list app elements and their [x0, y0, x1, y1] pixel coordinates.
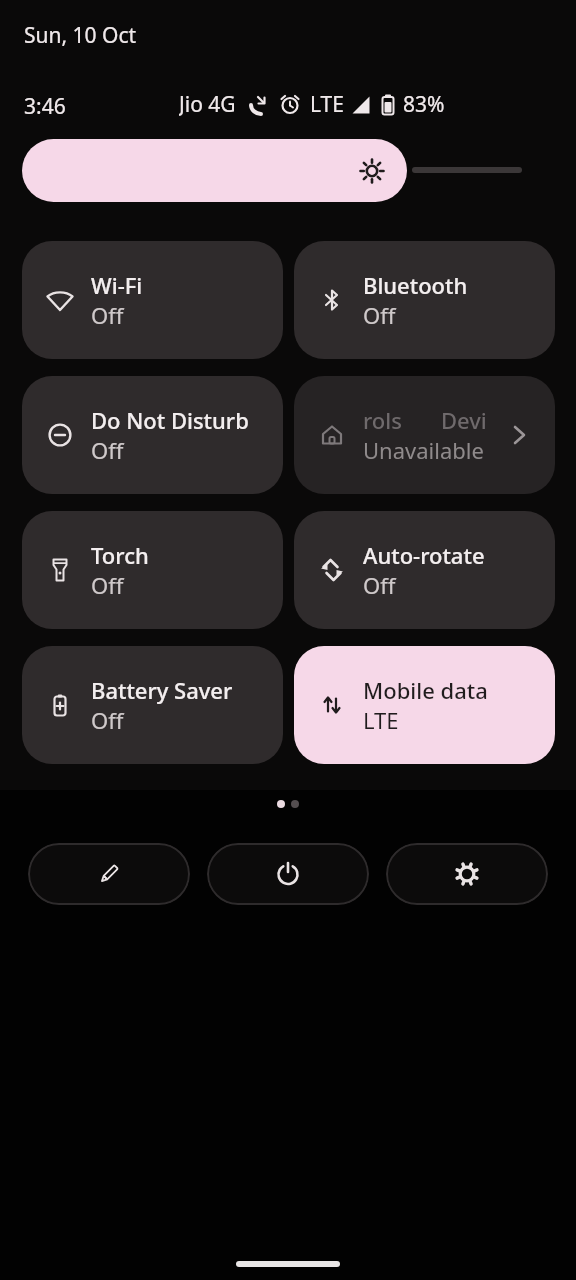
- staticText: 3:46: [24, 92, 66, 121]
- button[interactable]: [28, 843, 190, 905]
- staticText: rols: [363, 405, 402, 435]
- staticText: Off: [91, 570, 124, 600]
- staticText: LTE: [363, 705, 399, 735]
- button[interactable]: Mobile data: [294, 646, 555, 764]
- staticText: Unavailable: [363, 435, 484, 465]
- button[interactable]: rols: [294, 376, 555, 494]
- staticText: Sun, 10 Oct: [24, 21, 137, 50]
- button[interactable]: Torch: [22, 511, 283, 629]
- staticText: Do Not Disturb: [91, 405, 249, 435]
- staticText: Jio 4G: [179, 90, 236, 118]
- staticText: 83%: [403, 90, 445, 118]
- staticText: Off: [363, 570, 396, 600]
- staticText: Battery Saver: [91, 675, 233, 705]
- button[interactable]: [207, 843, 369, 905]
- staticText: Off: [91, 705, 124, 735]
- button[interactable]: Battery Saver: [22, 646, 283, 764]
- button[interactable]: Do Not Disturb: [22, 376, 283, 494]
- button[interactable]: Wi-Fi: [22, 241, 283, 359]
- button[interactable]: Auto-rotate: [294, 511, 555, 629]
- staticText: LTE: [310, 90, 344, 118]
- staticText: Off: [363, 300, 396, 330]
- staticText: Off: [91, 435, 124, 465]
- button[interactable]: [386, 843, 548, 905]
- staticText: Torch: [91, 540, 149, 570]
- staticText: Off: [91, 300, 124, 330]
- button[interactable]: Bluetooth: [294, 241, 555, 359]
- staticText: Auto-rotate: [363, 540, 485, 570]
- staticText: Devi: [441, 405, 487, 435]
- button[interactable]: [22, 139, 407, 202]
- staticText: Bluetooth: [363, 270, 468, 300]
- staticText: Mobile data: [363, 675, 488, 705]
- staticText: Wi-Fi: [91, 270, 143, 300]
